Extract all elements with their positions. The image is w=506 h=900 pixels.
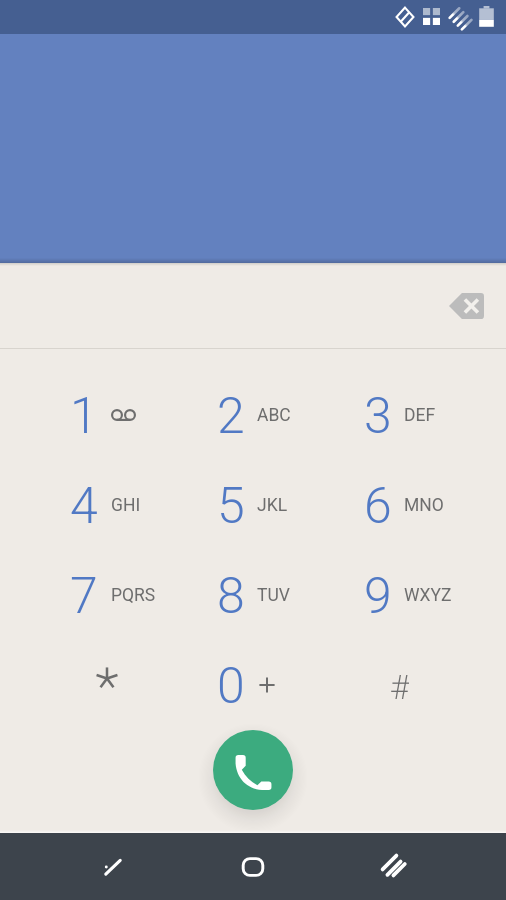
button[interactable]: 3 <box>324 371 471 461</box>
staticText: 2 <box>217 387 245 446</box>
staticText: 1 <box>70 387 98 446</box>
staticText: 4 <box>70 477 98 536</box>
staticText: 6 <box>364 477 392 536</box>
staticText: 3 <box>364 387 392 446</box>
button[interactable] <box>324 641 471 731</box>
staticText: 7 <box>70 567 98 626</box>
staticText: 9 <box>364 567 392 626</box>
button[interactable]: 4 <box>31 461 177 551</box>
button[interactable] <box>31 641 177 731</box>
button[interactable]: 5 <box>177 461 324 551</box>
button[interactable]: 9 <box>324 551 471 641</box>
button[interactable]: Back <box>66 833 160 900</box>
button[interactable]: Backspace <box>438 280 494 332</box>
staticText: GHI <box>111 495 141 516</box>
staticText: 0 <box>217 657 245 716</box>
staticText: PQRS <box>111 585 156 606</box>
staticText: 5 <box>217 477 245 536</box>
button[interactable]: 8 <box>177 551 324 641</box>
button[interactable]: 7 <box>31 551 177 641</box>
button[interactable]: 6 <box>324 461 471 551</box>
staticText: 8 <box>217 567 245 626</box>
button[interactable]: 0 <box>177 641 324 731</box>
button[interactable]: Call <box>213 730 293 810</box>
staticText: TUV <box>257 585 290 606</box>
staticText: ABC <box>257 405 291 426</box>
staticText: WXYZ <box>404 585 452 606</box>
staticText: DEF <box>404 405 436 426</box>
staticText: MNO <box>404 495 444 516</box>
button[interactable]: 1 <box>31 371 177 461</box>
button[interactable]: Home <box>206 833 300 900</box>
button[interactable]: Recent apps <box>347 833 441 900</box>
staticText: JKL <box>257 495 288 516</box>
button[interactable]: 2 <box>177 371 324 461</box>
